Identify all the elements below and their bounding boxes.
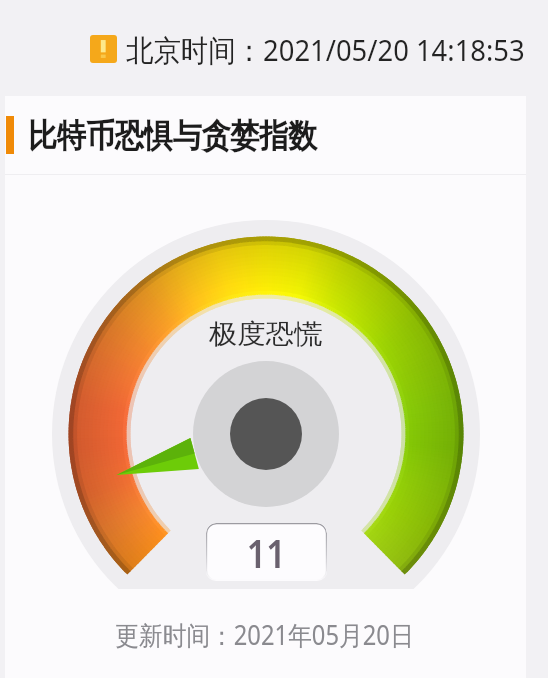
staticText: 更新时间：2021年05月20日 [115,616,414,652]
staticText: 比特币恐惧与贪婪指数 [28,116,317,157]
button[interactable]: 11 [206,523,327,581]
button[interactable]: Information [90,35,117,63]
staticText: 极度恐慌 [209,317,323,351]
staticText: 北京时间：2021/05/20 14:18:53 [126,29,525,71]
staticText: 11 [247,526,286,578]
